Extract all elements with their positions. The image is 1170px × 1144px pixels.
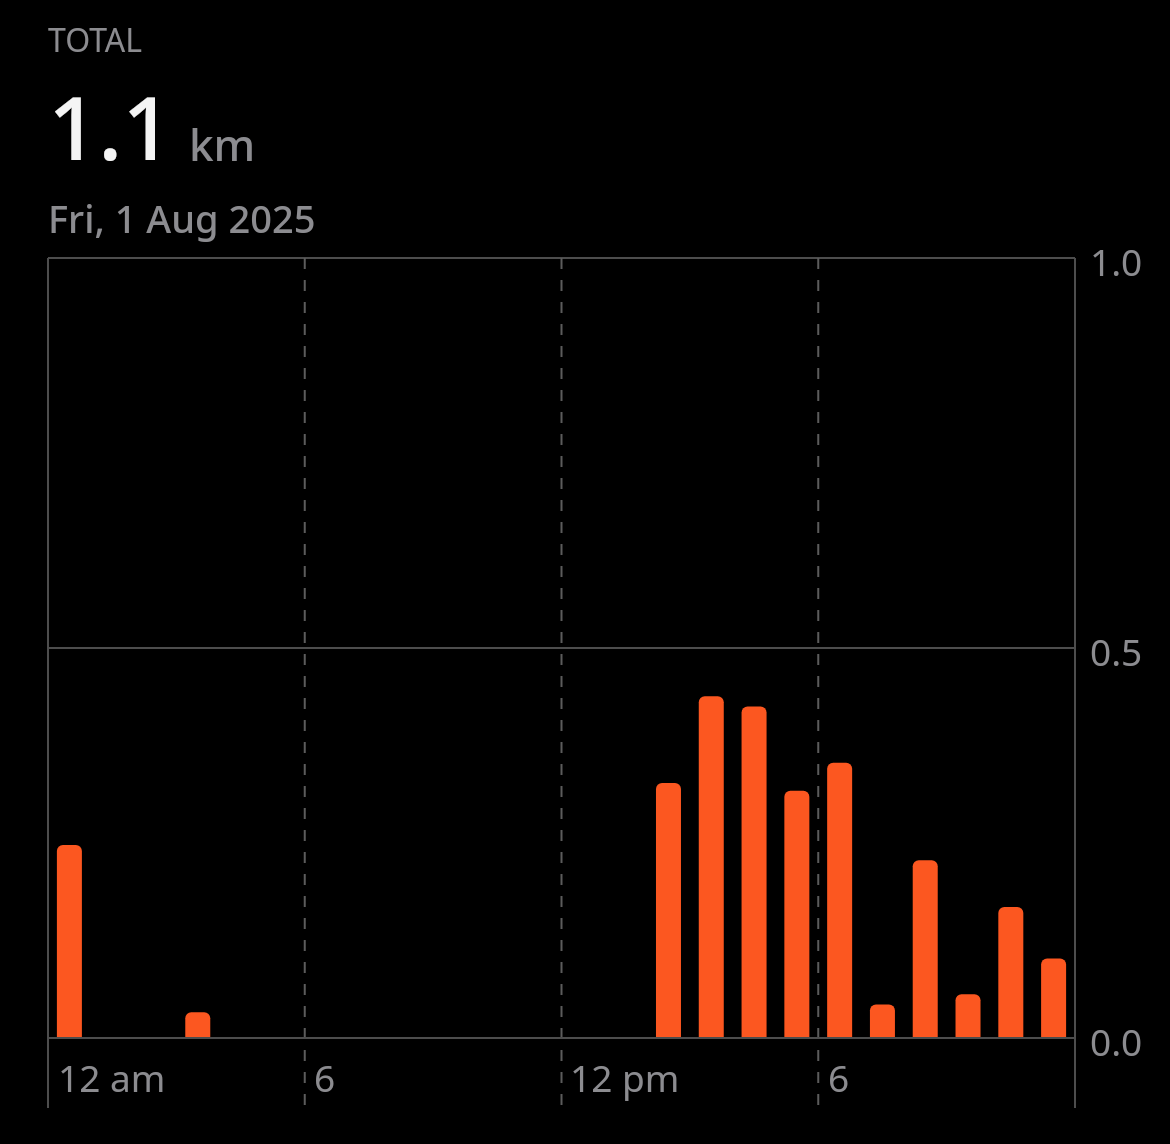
staticText: TOTAL xyxy=(48,18,142,62)
staticText: 0.0 xyxy=(1090,1016,1143,1066)
staticText: Fri, 1 Aug 2025 xyxy=(48,192,316,244)
staticText: 12 am xyxy=(58,1052,166,1102)
staticText: 6 xyxy=(828,1052,850,1102)
staticText: 1.1 xyxy=(48,66,173,186)
button[interactable]: Hourly distance chart xyxy=(0,0,1170,1144)
button[interactable]: TOTAL xyxy=(48,18,316,244)
staticText: km xyxy=(189,114,256,174)
staticText: 6 xyxy=(314,1052,336,1102)
staticText: 12 pm xyxy=(570,1052,680,1102)
staticText: 1.0 xyxy=(1090,236,1143,286)
staticText: 0.5 xyxy=(1090,626,1143,676)
